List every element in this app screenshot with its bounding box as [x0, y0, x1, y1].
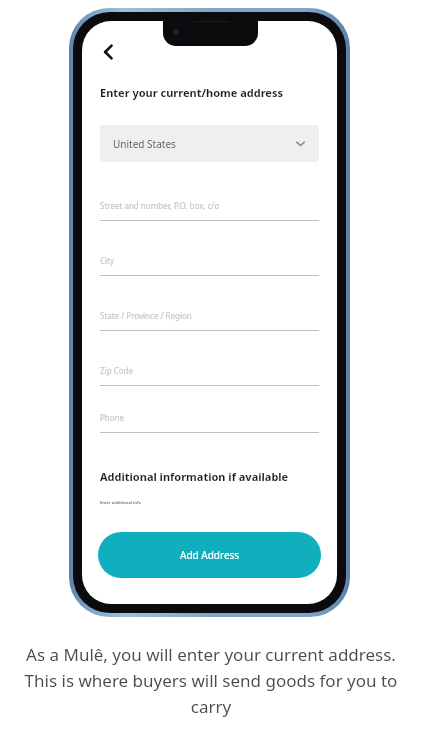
staticText: Enter additional info [100, 500, 141, 505]
staticText: City [100, 255, 115, 266]
staticText: Phone [100, 412, 125, 423]
staticText: Additional information if available [100, 469, 289, 484]
staticText: State / Province / Region [100, 310, 192, 321]
button[interactable]: Back [92, 35, 126, 69]
button[interactable]: City [100, 255, 319, 276]
staticText: United States [113, 137, 176, 151]
button[interactable]: Phone [100, 412, 319, 433]
staticText: As a Mulê, you will enter your current a… [22, 643, 400, 718]
staticText: Zip Code [100, 365, 133, 376]
button[interactable]: United States [100, 125, 319, 162]
staticText: Enter your current/home address [100, 85, 283, 100]
staticText: Add Address [180, 548, 240, 562]
button[interactable]: Zip Code [100, 365, 319, 386]
button[interactable]: Street and number, P.O. box, c/o [100, 200, 319, 221]
button[interactable]: Add Address [98, 532, 321, 578]
staticText: Street and number, P.O. box, c/o [100, 200, 220, 211]
button[interactable]: State / Province / Region [100, 310, 319, 331]
